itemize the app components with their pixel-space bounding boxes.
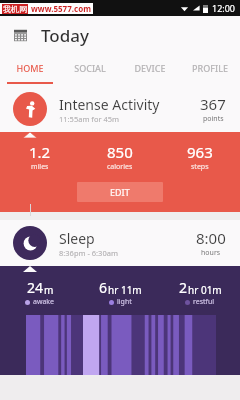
staticText: 1.2 bbox=[29, 142, 51, 162]
staticText: www.5577.com bbox=[31, 3, 91, 14]
staticText: 6 bbox=[99, 278, 108, 297]
staticText: restful bbox=[193, 297, 215, 307]
staticText: 12:00 bbox=[212, 2, 236, 14]
staticText: DEVICE bbox=[134, 62, 166, 74]
staticText: calories bbox=[107, 162, 133, 172]
button[interactable]: Sleep bbox=[0, 220, 240, 266]
staticText: miles bbox=[31, 162, 49, 172]
button[interactable]: EDIT bbox=[77, 182, 163, 202]
button[interactable]: Intense Activity bbox=[0, 86, 240, 132]
staticText: 24 bbox=[27, 278, 44, 297]
staticText: m bbox=[44, 283, 54, 297]
staticText: Today bbox=[41, 24, 89, 47]
staticText: EDIT bbox=[110, 186, 130, 198]
staticText: awake bbox=[33, 297, 55, 307]
other: Calendar bbox=[14, 29, 27, 42]
button[interactable]: DEVICE bbox=[120, 54, 180, 82]
staticText: 850 bbox=[107, 142, 133, 162]
staticText: 367 bbox=[200, 94, 226, 114]
staticText: hr 01m bbox=[188, 283, 222, 297]
button[interactable]: PROFILE bbox=[180, 54, 240, 82]
staticText: PROFILE bbox=[192, 62, 228, 74]
staticText: 8:00 bbox=[196, 228, 226, 248]
button[interactable]: SOCIAL bbox=[60, 54, 120, 82]
staticText: light bbox=[117, 297, 132, 307]
staticText: points bbox=[203, 114, 224, 124]
staticText: 我机网 bbox=[3, 4, 27, 14]
staticText: HOME bbox=[16, 62, 44, 74]
staticText: hours bbox=[201, 248, 221, 258]
staticText: 963 bbox=[187, 142, 213, 162]
staticText: 11:55am for 45m bbox=[59, 114, 120, 124]
staticText: Intense Activity bbox=[59, 95, 160, 114]
staticText: steps bbox=[191, 162, 209, 172]
staticText: hr 11m bbox=[108, 283, 142, 297]
staticText: Sleep bbox=[59, 229, 95, 248]
staticText: SOCIAL bbox=[74, 62, 106, 74]
button[interactable]: HOME bbox=[0, 54, 60, 82]
staticText: 8:36pm - 6:30am bbox=[59, 248, 118, 258]
staticText: 2 bbox=[179, 278, 188, 297]
